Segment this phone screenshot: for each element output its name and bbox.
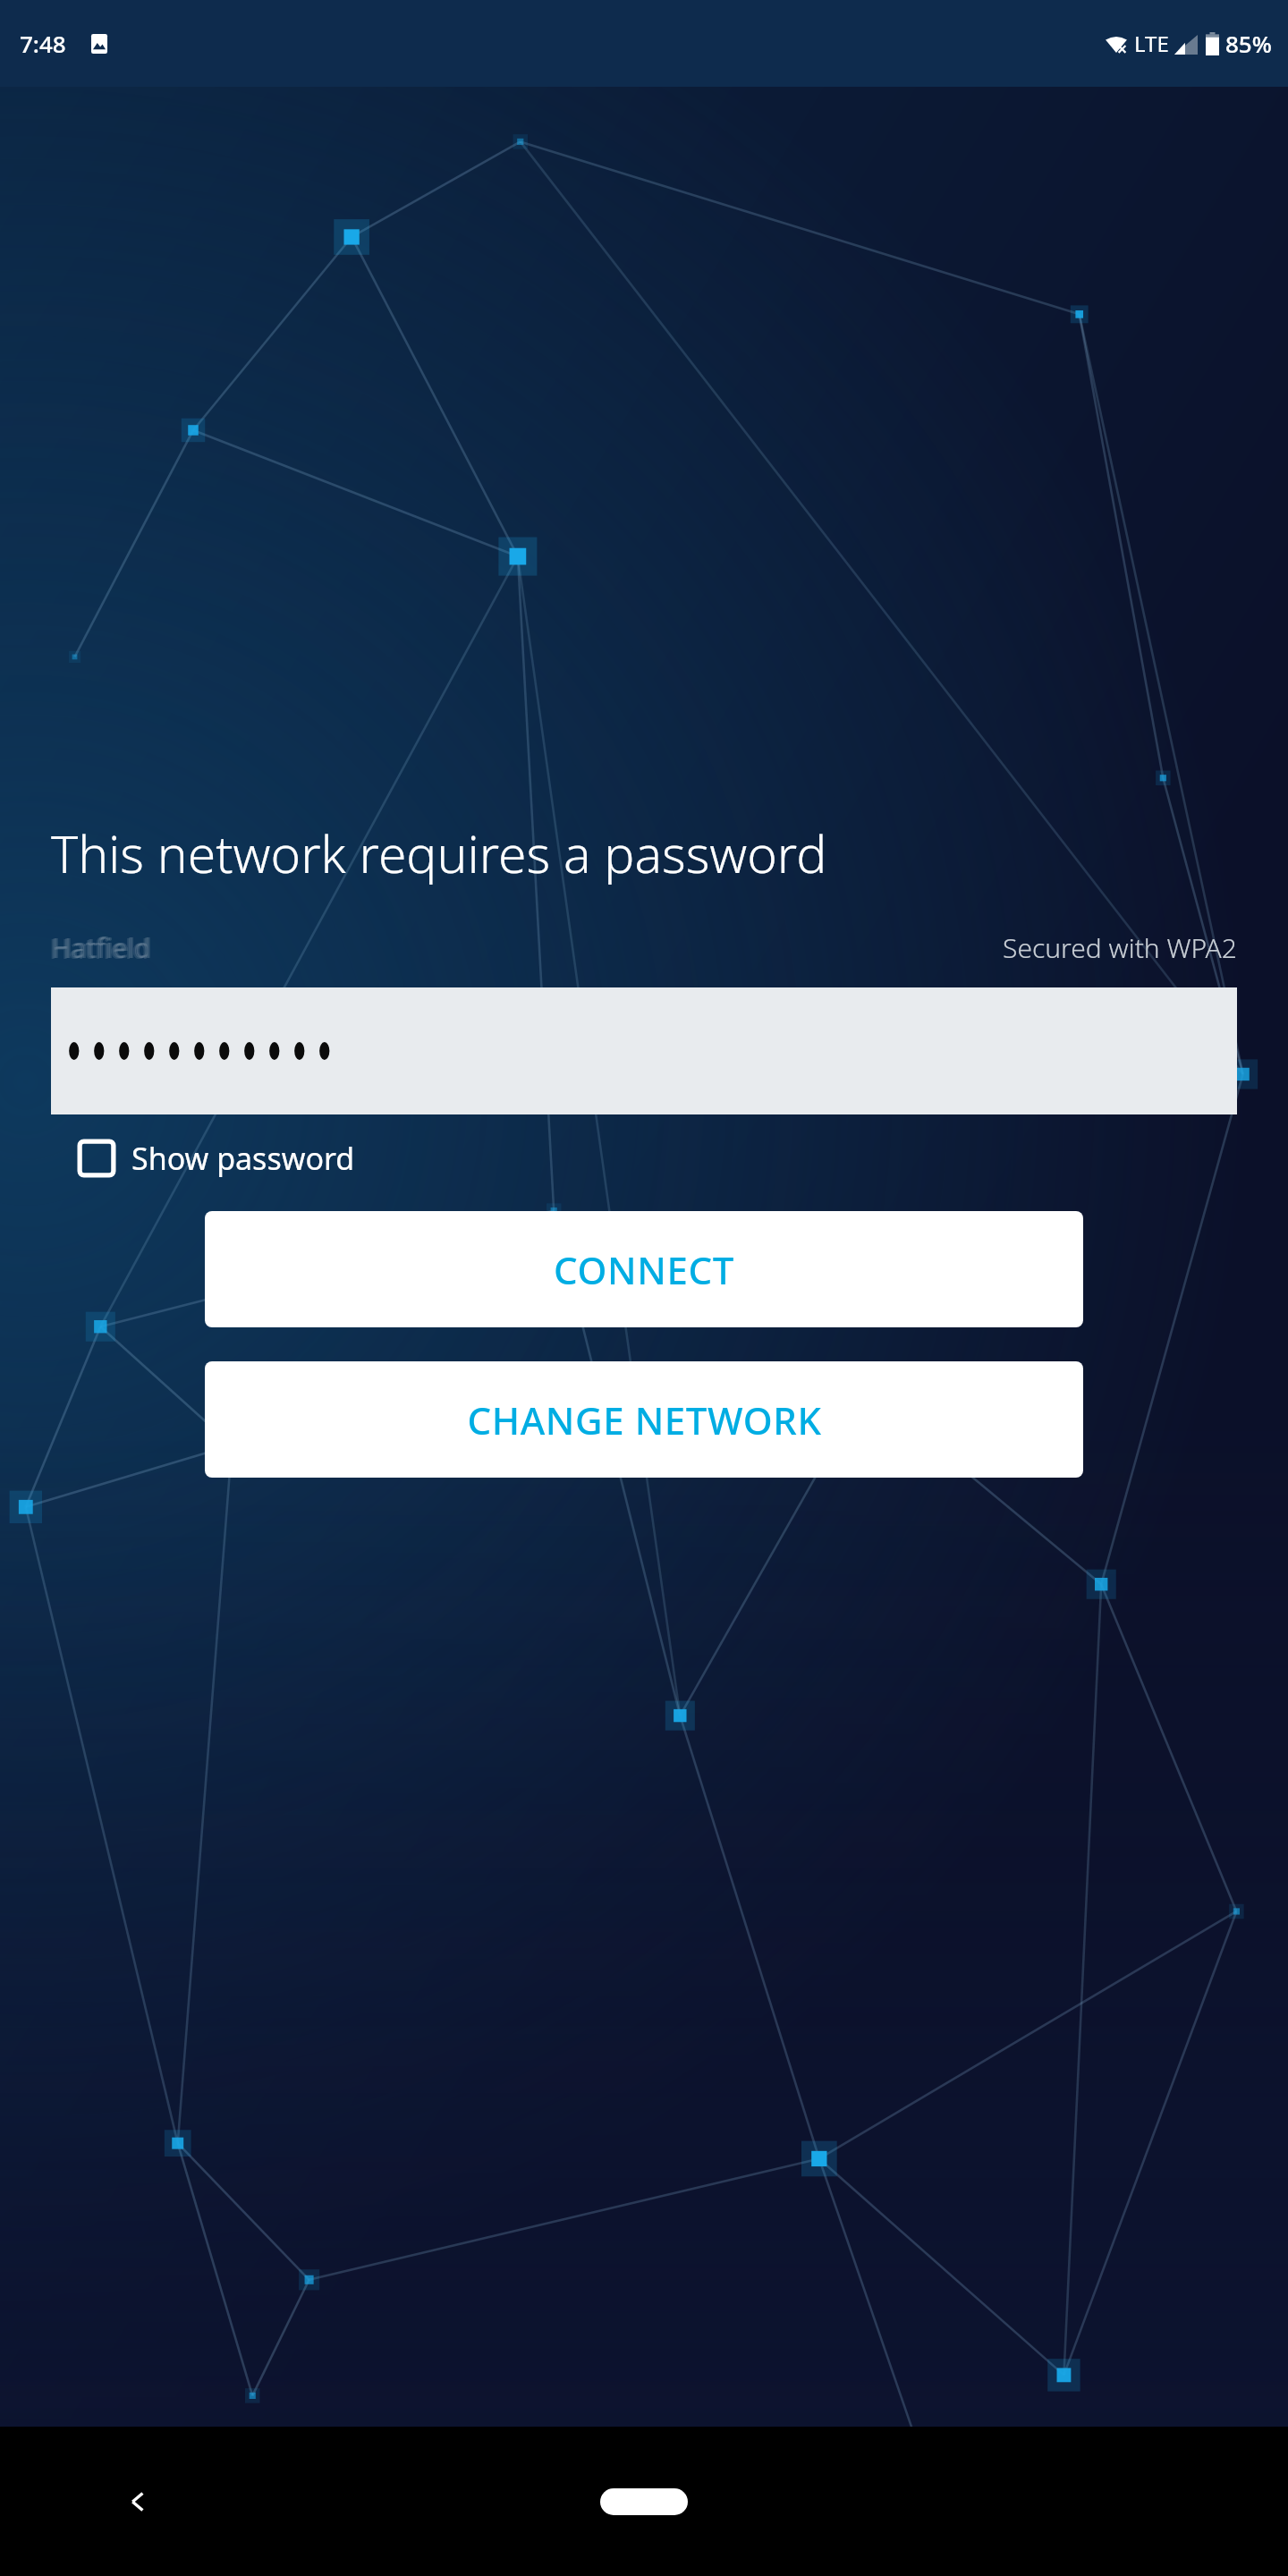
button[interactable]: CHANGE NETWORK [205,1361,1083,1478]
staticText: Show password [131,1138,355,1179]
button[interactable]: Home [586,2464,702,2539]
button[interactable]: Show password [76,1138,355,1179]
staticText: Secured with WPA2 [1003,929,1237,966]
staticText: LTE [1134,29,1169,58]
staticText: CONNECT [554,1244,734,1295]
staticText: CHANGE NETWORK [467,1394,822,1445]
staticText: Hatfield [53,929,153,966]
button[interactable]: Back [100,2464,175,2539]
staticText: 85% [1225,28,1272,59]
staticText: 7:48 [20,28,66,59]
button[interactable]: CONNECT [205,1211,1083,1327]
staticText: Hatfield [49,930,149,967]
staticText: Hatfield [51,929,151,966]
button[interactable] [51,987,1237,1114]
staticText: This network requires a password [51,818,827,888]
